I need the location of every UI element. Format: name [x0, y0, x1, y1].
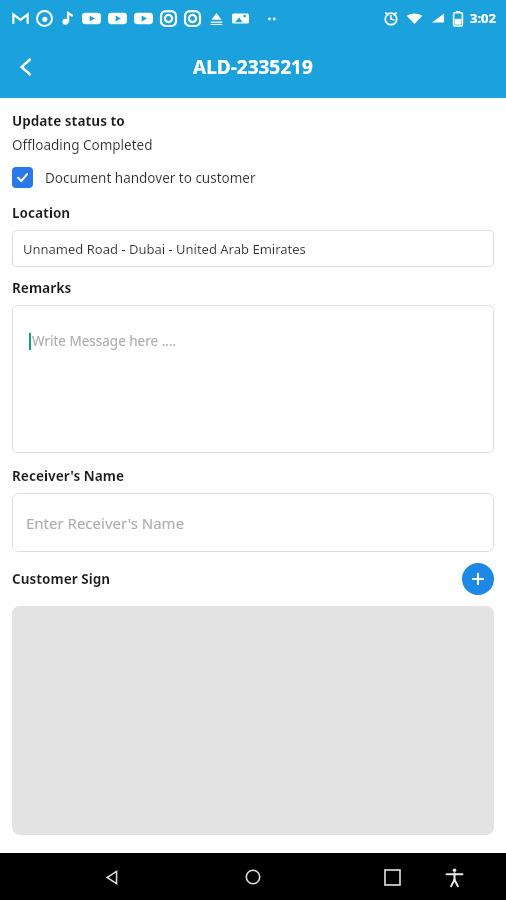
staticText: Offloading Completed	[12, 136, 153, 154]
button[interactable]: Add signature	[462, 563, 494, 595]
button[interactable]: Back	[90, 855, 134, 899]
button[interactable]: Unnamed Road - Dubai - United Arab Emira…	[12, 230, 494, 267]
staticText: Enter Receiver's Name	[26, 513, 185, 533]
button[interactable]: Document handover to customer	[12, 167, 256, 188]
button[interactable]: Back	[0, 41, 52, 93]
button[interactable]: Accessibility	[434, 857, 474, 897]
staticText: Document handover to customer	[45, 169, 256, 187]
button[interactable]: Recent apps	[370, 855, 414, 899]
staticText: Location	[12, 204, 71, 222]
staticText: Update status to	[12, 112, 125, 130]
staticText: ALD-2335219	[193, 54, 313, 80]
button[interactable]: Write Message here ....	[12, 305, 494, 453]
staticText: Receiver's Name	[12, 467, 125, 485]
staticText: 3:02	[470, 9, 496, 27]
staticText: Write Message here ....	[32, 332, 177, 350]
button[interactable]: Enter Receiver's Name	[12, 493, 494, 552]
staticText: Customer Sign	[12, 570, 111, 588]
staticText: Remarks	[12, 279, 72, 297]
button[interactable]: Home	[231, 855, 275, 899]
staticText: Unnamed Road - Dubai - United Arab Emira…	[23, 240, 306, 258]
